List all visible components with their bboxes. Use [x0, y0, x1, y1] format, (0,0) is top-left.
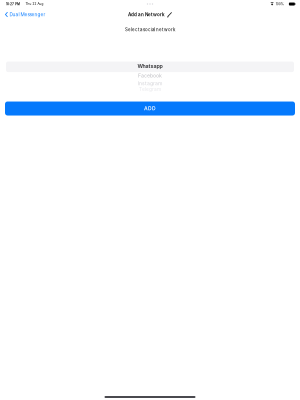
button[interactable]: ADD: [5, 101, 295, 115]
staticText: Dual Messenger: [9, 12, 45, 17]
button[interactable]: Dual Messenger: [0, 9, 49, 20]
staticText: 10:27 PM: [6, 2, 20, 6]
button[interactable]: Facebook: [0, 73, 300, 78]
staticText: Whatsapp: [137, 63, 162, 69]
staticText: ADD: [144, 105, 156, 111]
staticText: 100%: [276, 2, 284, 6]
staticText: Thu 22 Aug: [25, 2, 43, 6]
staticText: Add an Network: [128, 12, 165, 17]
staticText: Instagram: [138, 80, 162, 86]
staticText: Select a social network: [125, 27, 175, 32]
button[interactable]: Whatsapp: [0, 63, 300, 69]
staticText: Telegram: [139, 86, 161, 92]
staticText: Facebook: [138, 73, 162, 79]
button[interactable]: Instagram: [0, 81, 300, 86]
